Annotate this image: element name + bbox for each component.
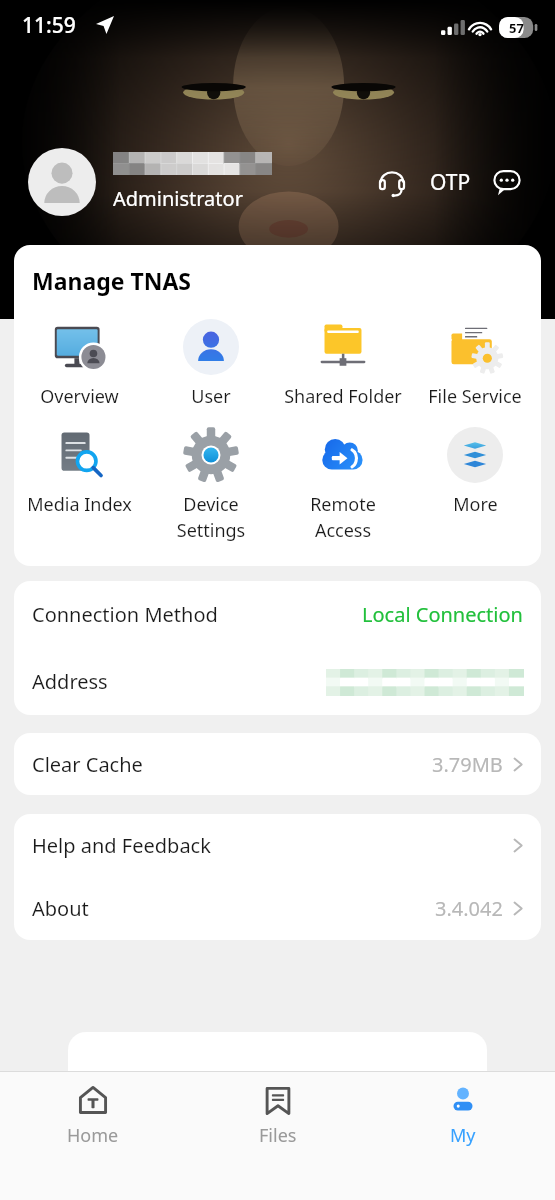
staticText: User: [191, 384, 231, 409]
staticText: Connection Method: [32, 601, 218, 628]
button[interactable]: Support: [370, 160, 414, 204]
staticText: Remote Access: [281, 492, 405, 542]
button[interactable]: Messages: [487, 162, 527, 202]
staticText: OTP: [430, 168, 471, 197]
staticText: Address: [32, 668, 108, 695]
button[interactable]: More: [409, 425, 541, 519]
button[interactable]: About: [14, 877, 541, 940]
button[interactable]: Home: [0, 1080, 185, 1152]
staticText: My: [450, 1123, 476, 1148]
button[interactable]: My: [370, 1080, 555, 1152]
button[interactable]: Address: [14, 648, 541, 715]
staticText: Overview: [40, 384, 119, 409]
staticText: Device Settings: [149, 492, 273, 542]
button[interactable]: Media Index: [14, 425, 145, 519]
staticText: Home: [67, 1123, 119, 1148]
button[interactable]: OTP: [428, 168, 473, 197]
staticText: Manage TNAS: [32, 265, 191, 296]
staticText: 11:59: [22, 11, 76, 40]
button[interactable]: Shared Folder: [277, 317, 409, 411]
staticText: More: [453, 492, 498, 517]
button[interactable]: Remote Access: [277, 425, 409, 544]
staticText: Administrator: [113, 185, 243, 212]
staticText: Files: [259, 1123, 297, 1148]
staticText: About: [32, 895, 89, 922]
staticText: Help and Feedback: [32, 832, 211, 859]
button[interactable]: Help and Feedback: [14, 814, 541, 877]
button[interactable]: Device Settings: [145, 425, 277, 544]
button[interactable]: File Service: [409, 317, 541, 411]
button[interactable]: Profile avatar: [28, 148, 96, 216]
button[interactable]: User: [145, 317, 277, 411]
staticText: 3.4.042: [435, 895, 503, 922]
button[interactable]: Connection Method: [14, 581, 541, 648]
staticText: 3.79MB: [432, 751, 503, 778]
button[interactable]: Clear Cache: [14, 733, 541, 795]
button[interactable]: Overview: [14, 317, 145, 411]
staticText: Shared Folder: [284, 384, 402, 409]
staticText: File Service: [428, 384, 522, 409]
staticText: 57: [509, 19, 524, 37]
staticText: Local Connection: [362, 601, 523, 628]
button[interactable]: Files: [185, 1080, 370, 1152]
staticText: Clear Cache: [32, 751, 143, 778]
staticText: Media Index: [27, 492, 132, 517]
